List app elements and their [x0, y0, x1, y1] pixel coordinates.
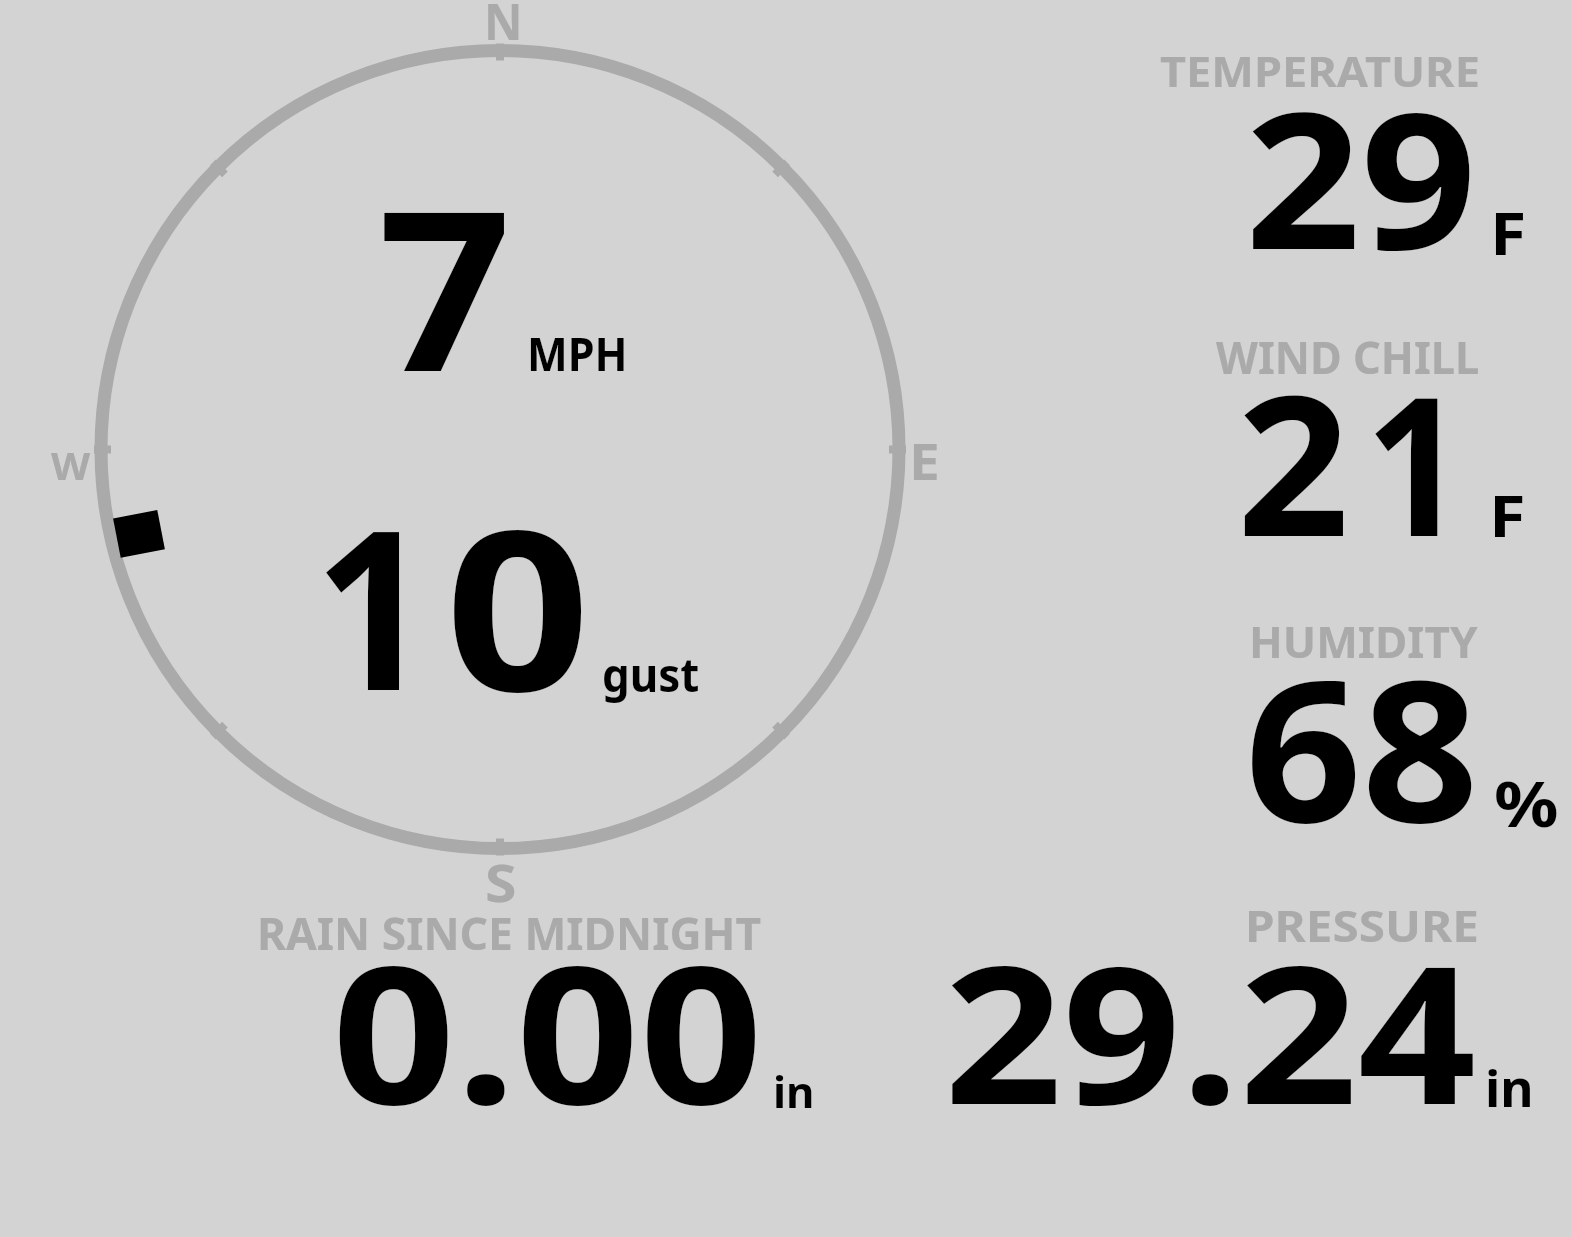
staticText: 7 [378, 135, 513, 435]
button[interactable]: Rain since midnight 0.00 inches [240, 890, 840, 1120]
staticText: F [1490, 192, 1527, 272]
staticText: 1 [314, 454, 432, 755]
staticText: RAIN SINCE MIDNIGHT [257, 902, 761, 963]
staticText: TEMPERATURE [1160, 42, 1480, 99]
button[interactable]: Humidity 68 percent [1150, 600, 1570, 840]
button[interactable]: Wind chill 21 degrees Fahrenheit [1150, 315, 1570, 550]
staticText: S [485, 846, 517, 917]
staticText: HUMIDITY [1249, 612, 1478, 671]
staticText: % [1494, 759, 1559, 845]
staticText: gust [602, 642, 700, 706]
staticText: WIND CHILL [1216, 326, 1480, 387]
staticText: PRESSURE [1245, 896, 1480, 955]
staticText: E [909, 427, 940, 495]
staticText: 29.24 [944, 901, 1476, 1160]
staticText: MPH [527, 322, 628, 385]
staticText: in [1485, 1054, 1534, 1122]
button[interactable]: Wind 7 miles per hour, gusting 10, direc… [90, 40, 910, 860]
staticText: 68 [1245, 612, 1480, 880]
staticText: W [51, 440, 91, 491]
staticText: in [773, 1062, 815, 1121]
staticText: 0 [445, 456, 590, 756]
staticText: F [1489, 475, 1526, 554]
staticText: N [484, 0, 523, 55]
staticText: 0.00 [332, 900, 764, 1161]
button[interactable]: Temperature 29 degrees Fahrenheit [1150, 30, 1570, 270]
button[interactable]: Pressure 29.24 inches [930, 890, 1550, 1120]
staticText: 2 [1237, 329, 1350, 593]
staticText: 1 [1365, 331, 1465, 592]
staticText: 29 [1245, 47, 1477, 304]
